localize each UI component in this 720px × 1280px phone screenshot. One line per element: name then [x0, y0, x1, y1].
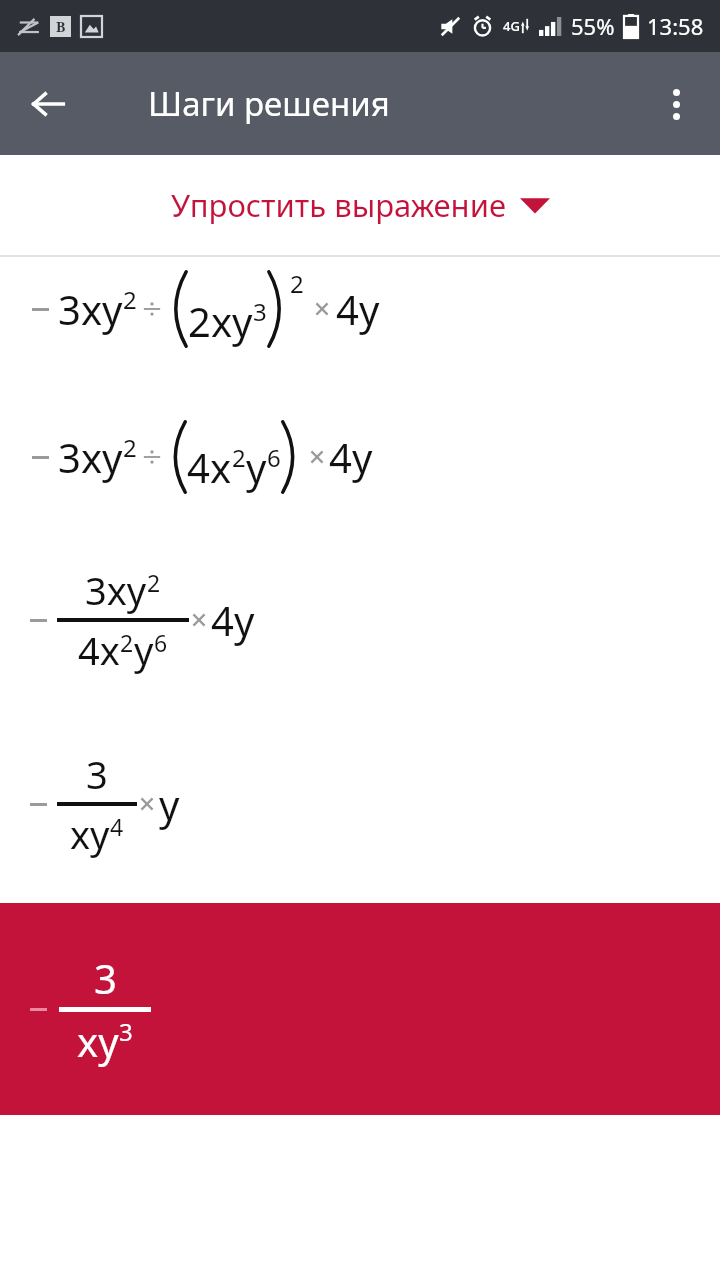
button[interactable]: 3 — [0, 729, 720, 879]
staticText: y — [159, 777, 180, 831]
staticText: 4y — [336, 282, 380, 336]
staticText: 3xy — [85, 564, 147, 616]
staticText: y — [134, 624, 154, 676]
staticText: 4 — [110, 811, 124, 842]
button[interactable]: 3xy — [0, 405, 720, 509]
button[interactable]: 3 — [0, 903, 720, 1115]
button[interactable]: 3xy — [0, 257, 720, 361]
staticText: 2 — [147, 567, 161, 598]
staticText: 2 — [120, 627, 134, 658]
button[interactable]: Back — [14, 70, 82, 138]
button[interactable]: 3xy — [0, 545, 720, 695]
staticText: 2 — [123, 431, 137, 464]
staticText: 4x — [187, 440, 232, 494]
staticText: 13:58 — [647, 11, 704, 41]
staticText: 3 — [119, 1015, 133, 1048]
staticText: Шаги решения — [148, 81, 390, 126]
staticText: 2xy — [188, 294, 253, 348]
staticText: 2 — [232, 441, 246, 474]
staticText: 4y — [211, 593, 255, 647]
button[interactable]: Упростить выражение — [0, 155, 720, 255]
staticText: 3xy — [58, 430, 123, 484]
staticText: B — [56, 17, 66, 36]
staticText: Упростить выражение — [171, 184, 506, 226]
staticText: 4y — [329, 430, 373, 484]
staticText: 6 — [154, 627, 168, 658]
staticText: 4G — [503, 17, 520, 35]
staticText: 6 — [267, 441, 281, 474]
staticText: 3 — [253, 295, 267, 328]
staticText: y — [246, 440, 267, 494]
staticText: xy — [77, 1014, 119, 1068]
staticText: 4x — [78, 624, 120, 676]
staticText: 3 — [94, 951, 117, 1005]
staticText: 55% — [571, 11, 615, 41]
staticText: 2 — [123, 283, 137, 316]
staticText: 2 — [290, 267, 304, 300]
button[interactable]: More options — [644, 72, 708, 136]
staticText: xy — [70, 808, 110, 860]
staticText: 3xy — [58, 282, 123, 336]
staticText: 3 — [86, 748, 108, 800]
